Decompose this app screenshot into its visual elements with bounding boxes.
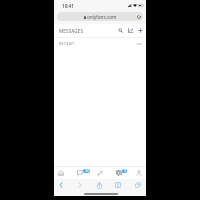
button[interactable]: Back — [53, 179, 69, 191]
staticText: MESSAGES — [59, 28, 84, 34]
staticText: 24 — [85, 169, 89, 173]
button[interactable]: Messages — [111, 167, 127, 179]
button[interactable]: Bookmarks — [110, 179, 126, 191]
button[interactable]: Chats — [72, 167, 88, 179]
staticText: RECENT — [59, 41, 75, 46]
button[interactable]: RECENT — [54, 38, 146, 49]
button[interactable]: New post — [92, 167, 108, 179]
button[interactable]: onlyfans.com — [57, 12, 143, 21]
button[interactable]: Forward — [72, 179, 88, 191]
button[interactable]: Search — [117, 27, 124, 34]
staticText: onlyfans.com — [87, 14, 117, 20]
button[interactable]: Statistics — [127, 27, 134, 34]
button[interactable]: Home — [53, 167, 69, 179]
staticText: 10:41 — [62, 3, 74, 9]
button[interactable]: Share — [91, 179, 107, 191]
button[interactable]: Profile — [131, 167, 147, 179]
button[interactable]: Tabs — [130, 179, 146, 191]
button[interactable]: Reload page — [136, 14, 141, 19]
staticText: 9 — [124, 169, 126, 173]
button[interactable]: New message — [137, 27, 144, 34]
